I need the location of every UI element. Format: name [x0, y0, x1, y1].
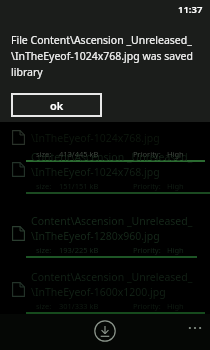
staticText: Content\Ascension _Unreleased_ — [31, 150, 193, 164]
staticText: Priority: — [133, 301, 161, 311]
staticText: 193/225 kB — [59, 245, 99, 255]
staticText: size: — [36, 301, 52, 311]
staticText: High — [167, 149, 184, 159]
staticText: High — [167, 301, 184, 311]
staticText: 151/151 kB — [59, 181, 99, 191]
staticText: High — [167, 181, 184, 191]
staticText: size: — [36, 245, 52, 255]
button[interactable]: \InTheEyeof-1024x768.jpg — [0, 116, 210, 172]
staticText: File Content\Ascension _Unreleased_ — [11, 33, 192, 47]
staticText: ok — [50, 98, 64, 113]
staticText: Priority: — [133, 245, 161, 255]
staticText: High — [167, 245, 184, 255]
button[interactable]: Content\Ascension _Unreleased_ — [0, 212, 210, 268]
staticText: \InTheEyeof-1024x768.jpg — [31, 131, 160, 145]
button[interactable]: Content\Ascension _Unreleased_ — [0, 148, 210, 204]
staticText: Content\Ascension _Unreleased_ — [31, 270, 193, 284]
button[interactable]: ok — [11, 93, 102, 117]
staticText: \InTheEyeof-1280x960.jpg — [31, 229, 160, 243]
staticText: \InTheEyeof-1024x768.jpg was saved in — [11, 49, 202, 63]
staticText: size: — [36, 181, 52, 191]
staticText: \InTheEyeof-1600x1200.jpg — [31, 285, 166, 299]
staticText: Priority: — [133, 181, 161, 191]
staticText: \InTheEyeof-1024x768.jpg — [31, 165, 160, 179]
staticText: library — [11, 65, 43, 79]
staticText: 11:37 — [178, 3, 203, 16]
staticText: 413/445 kB — [59, 149, 99, 159]
staticText: Priority: — [133, 149, 161, 159]
staticText: Content\Ascension _Unreleased_ — [31, 214, 193, 228]
staticText: size: — [36, 149, 52, 159]
button[interactable]: More options — [180, 315, 210, 341]
staticText: 301/333 kB — [59, 301, 99, 311]
button[interactable]: Content\Ascension _Unreleased_ — [0, 268, 210, 324]
button[interactable]: Download — [88, 314, 122, 348]
